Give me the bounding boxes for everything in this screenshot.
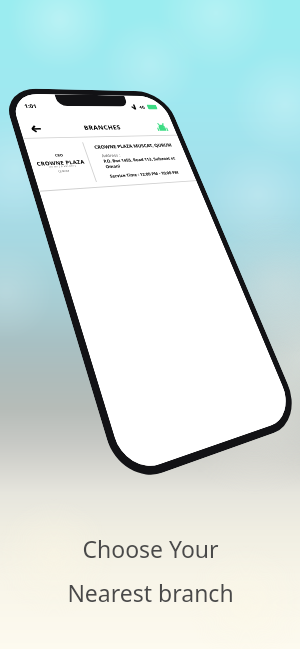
staticText: Service Time : 12:00 PM - 10:00 PM xyxy=(109,170,180,179)
staticText: Choose Your xyxy=(82,533,219,564)
staticText: Nearest branch xyxy=(67,577,234,608)
staticText: CRO xyxy=(54,153,64,158)
button[interactable]: CRO xyxy=(23,135,196,191)
staticText: 1:01 xyxy=(23,103,38,109)
button[interactable]: Back xyxy=(26,122,46,135)
staticText: P.O. Box 1455, Road 113, Sultanat ot xyxy=(103,156,176,164)
staticText: 4G xyxy=(138,104,146,110)
staticText: Omani xyxy=(105,164,121,170)
button[interactable]: Android xyxy=(153,121,170,133)
staticText: CROWNE PLAZA MUSCAT, QURUM xyxy=(93,142,173,150)
staticText: H O T E L S & R E S O R T S xyxy=(49,165,76,168)
staticText: CROWNE PLAZA xyxy=(35,158,85,167)
staticText: Address : xyxy=(101,153,122,159)
staticText: QURUM xyxy=(58,169,70,173)
staticText: BRANCHES xyxy=(83,123,122,131)
